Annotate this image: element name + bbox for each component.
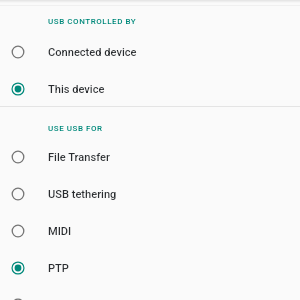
toggle[interactable]: File Transfer (0, 138, 300, 175)
staticText: This device (48, 83, 105, 96)
toggle[interactable]: MIDI (0, 212, 300, 249)
staticText: MIDI (48, 225, 72, 238)
toggle[interactable]: USB tethering (0, 175, 300, 212)
toggle[interactable]: PTP (0, 249, 300, 286)
toggle[interactable]: Connected device (0, 33, 300, 70)
staticText: File Transfer (48, 151, 110, 164)
toggle[interactable]: This device (0, 70, 300, 107)
staticText: USB tethering (48, 188, 117, 201)
toggle[interactable]: No data transfer (0, 286, 300, 300)
staticText: USE USB FOR (48, 124, 103, 133)
staticText: PTP (48, 262, 69, 275)
staticText: USB CONTROLLED BY (48, 17, 137, 26)
staticText: Connected device (48, 46, 137, 59)
